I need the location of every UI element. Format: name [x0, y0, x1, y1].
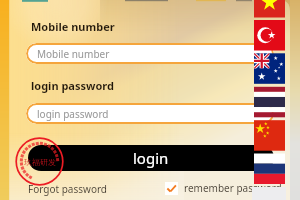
other: Language flags: [252, 0, 300, 200]
staticText: Mobile number: [31, 19, 115, 34]
button[interactable]: Mobile number: [26, 43, 274, 64]
button[interactable]: login: [28, 145, 274, 171]
staticText: login: [133, 148, 169, 168]
button[interactable]: remember password: [165, 181, 282, 195]
button[interactable]: login password: [26, 103, 274, 124]
staticText: login password: [31, 78, 114, 93]
staticText: 玖福研发: [24, 157, 56, 167]
staticText: remember password: [184, 181, 282, 195]
staticText: Mobile number: [37, 47, 110, 61]
staticText: Forgot password: [28, 182, 108, 196]
staticText: login password: [37, 107, 109, 121]
button[interactable]: Forgot password: [28, 182, 108, 196]
